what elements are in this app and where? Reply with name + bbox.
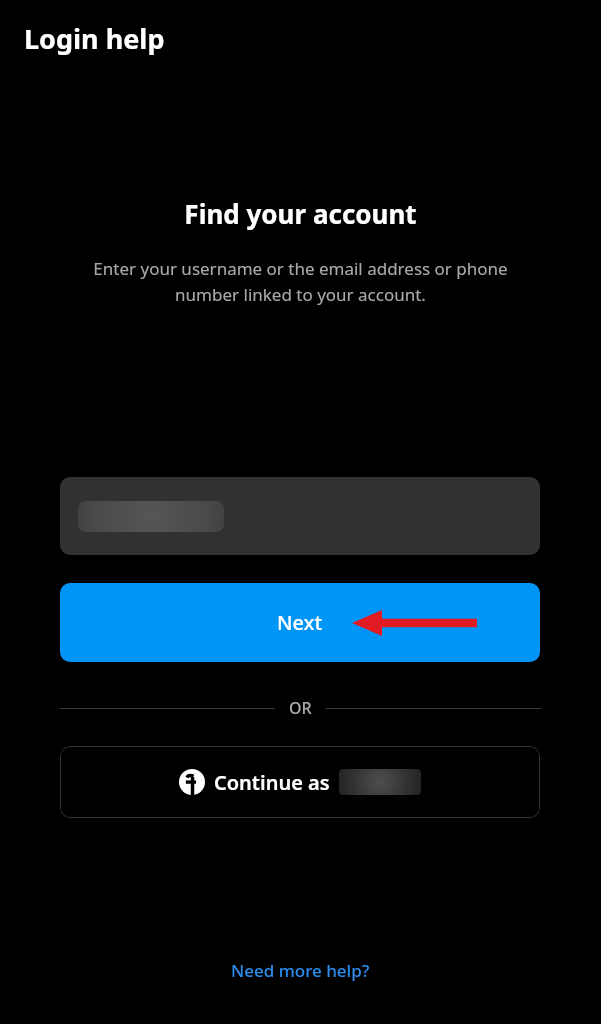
staticText: Login help (24, 20, 165, 57)
button[interactable]: Username, email or phone (60, 477, 540, 555)
staticText: Enter your username or the email address… (60, 257, 541, 306)
button[interactable]: Next (60, 583, 540, 662)
staticText: Find your account (184, 196, 417, 231)
button[interactable]: Need more help? (221, 955, 380, 986)
staticText: OR (289, 697, 312, 719)
staticText: Continue as (214, 769, 330, 796)
button[interactable]: Continue as (60, 746, 540, 818)
staticText: Next (277, 609, 323, 636)
staticText: Need more help? (231, 959, 370, 982)
